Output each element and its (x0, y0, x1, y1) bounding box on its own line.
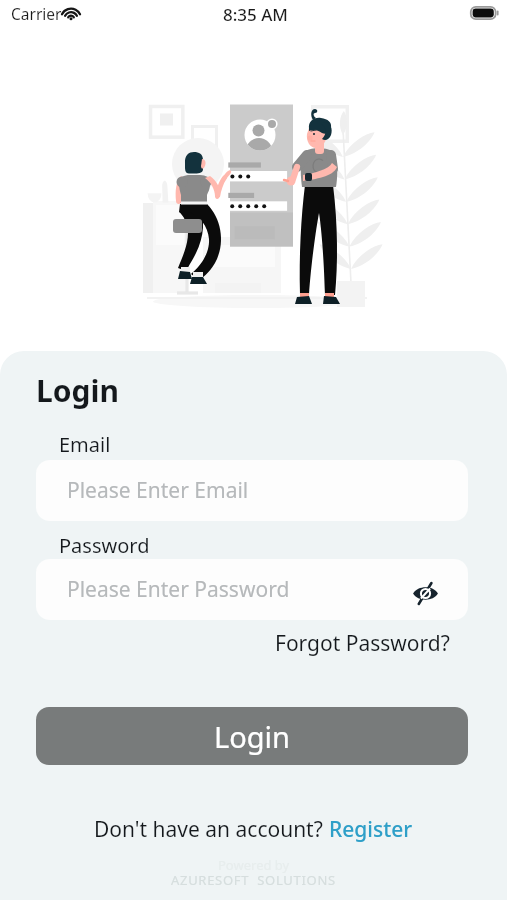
staticText: AZURESOFT SOLUTIONS (171, 871, 336, 889)
button[interactable]: Forgot Password? (275, 629, 468, 658)
button[interactable]: Register (329, 815, 413, 844)
button[interactable]: Login (36, 707, 468, 765)
staticText: Email (59, 431, 111, 458)
staticText: Password (59, 532, 150, 559)
staticText: Login (214, 717, 290, 756)
button[interactable]: Please Enter Email (36, 460, 468, 521)
staticText: Login (36, 370, 119, 411)
staticText: Carrier (11, 3, 62, 24)
staticText: Don't have an account? (94, 815, 329, 844)
staticText: Please Enter Email (67, 476, 249, 505)
staticText: 8:35 AM (223, 3, 288, 26)
button[interactable]: Please Enter Password (36, 559, 468, 620)
button[interactable]: Show password (410, 578, 440, 608)
staticText: Please Enter Password (67, 575, 290, 604)
